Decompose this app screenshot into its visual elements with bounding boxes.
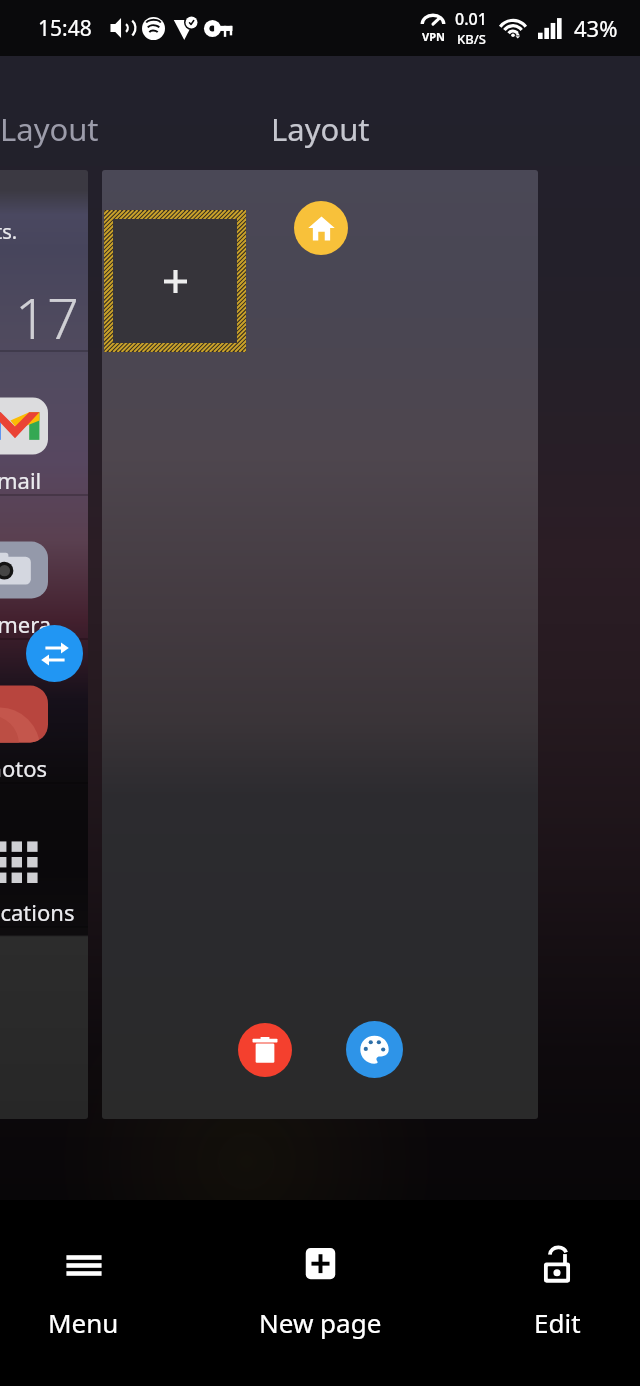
staticText: New page: [259, 1305, 382, 1340]
staticText: Layout: [271, 108, 370, 150]
staticText: Edit: [534, 1305, 581, 1340]
staticText: Pas d'événements.: [0, 218, 18, 245]
button[interactable]: Set as home page: [294, 201, 348, 255]
button[interactable]: Applications: [0, 784, 88, 926]
button[interactable]: Delete page: [238, 1023, 292, 1077]
button[interactable]: Menu: [0, 1200, 167, 1386]
button[interactable]: Calendar widget: [0, 208, 88, 350]
button[interactable]: New page: [215, 1200, 425, 1386]
button[interactable]: Change theme: [346, 1021, 403, 1078]
button[interactable]: Calendar widget: [0, 170, 88, 1119]
staticText: 43%: [574, 13, 618, 43]
button[interactable]: Edit: [477, 1200, 637, 1386]
staticText: VPN: [422, 29, 445, 44]
staticText: Gmail: [0, 465, 42, 495]
staticText: KB/S: [457, 30, 486, 48]
staticText: 15:48: [38, 14, 92, 43]
staticText: Layout: [0, 108, 99, 150]
button[interactable]: Gmail: [0, 352, 88, 494]
button[interactable]: Swap pages: [26, 625, 83, 682]
staticText: 17: [15, 279, 79, 355]
staticText: Photos: [0, 753, 48, 783]
staticText: 0.01: [455, 8, 487, 30]
button[interactable]: Camera: [0, 496, 88, 638]
staticText: Camera: [0, 609, 52, 639]
staticText: Menu: [48, 1305, 119, 1340]
button[interactable]: Set as home page: [102, 170, 538, 1119]
staticText: Applications: [0, 897, 75, 927]
button[interactable]: Photos: [0, 640, 88, 782]
